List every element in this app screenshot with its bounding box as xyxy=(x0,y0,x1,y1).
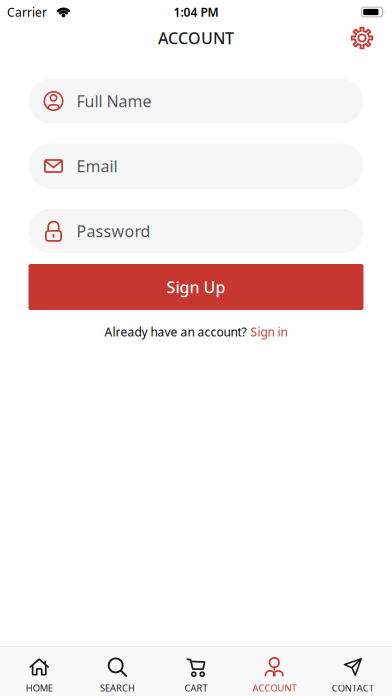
button[interactable]: SEARCH xyxy=(78,647,157,696)
staticText: Carrier xyxy=(7,4,47,20)
button[interactable]: ACCOUNT xyxy=(235,647,314,696)
staticText: Already have an account? xyxy=(104,324,246,340)
staticText: 1:04 PM xyxy=(173,4,218,20)
staticText: Full Name xyxy=(76,90,151,112)
staticText: Email xyxy=(76,155,117,177)
staticText: CART xyxy=(184,682,207,694)
staticText: Sign in xyxy=(250,324,287,340)
button[interactable]: Sign Up xyxy=(28,264,363,310)
button[interactable]: HOME xyxy=(0,647,78,696)
staticText: CONTACT xyxy=(332,682,374,694)
button[interactable]: Sign in xyxy=(250,324,287,340)
button[interactable]: Settings xyxy=(351,27,373,49)
staticText: HOME xyxy=(26,682,53,694)
staticText: Sign Up xyxy=(166,276,225,298)
staticText: Password xyxy=(76,220,150,242)
button[interactable]: CART xyxy=(157,647,235,696)
button[interactable]: CONTACT xyxy=(314,647,392,696)
staticText: SEARCH xyxy=(100,682,135,694)
staticText: ACCOUNT xyxy=(252,682,296,694)
staticText: ACCOUNT xyxy=(158,27,234,49)
